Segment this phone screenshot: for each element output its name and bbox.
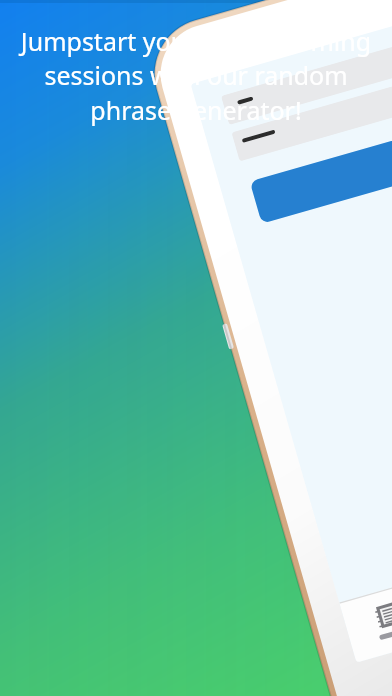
button[interactable]: App preview on phone: [0, 0, 392, 696]
staticText: Jumpstart your brainstorming sessions wi…: [16, 24, 376, 128]
